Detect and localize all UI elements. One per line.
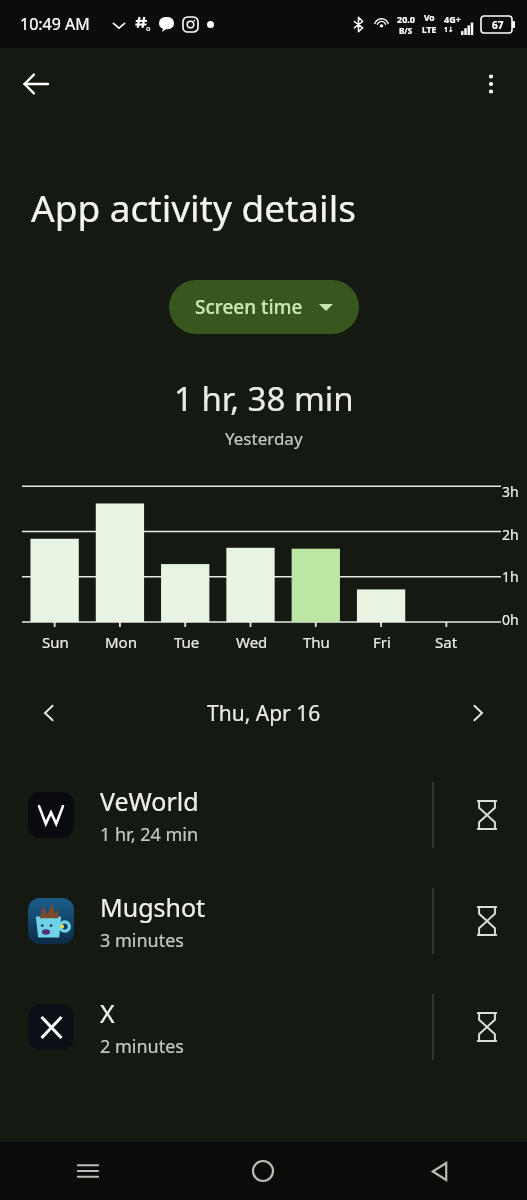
staticText: 2 minutes [100,1034,184,1059]
staticText: Tue [174,632,200,652]
button[interactable]: Next day [447,682,509,744]
button[interactable]: Set app timer for X [447,987,527,1067]
staticText: 67 [492,18,504,32]
staticText: LTE [422,24,437,36]
staticText: Fri [373,632,391,652]
button[interactable]: Previous day [18,682,80,744]
staticText: Thu [303,632,330,652]
staticText: 1 hr, 38 min [174,376,354,421]
staticText: 20.0 [397,13,415,25]
button[interactable]: Recent apps [0,1142,175,1200]
staticText: X [100,996,115,1030]
staticText: VeWorld [100,784,199,818]
staticText: Wed [236,632,268,652]
staticText: Sat [435,632,458,652]
staticText: 1↓ [444,25,454,35]
button[interactable]: Mugshot [0,868,527,974]
staticText: Screen time [195,294,303,320]
staticText: 1 hr, 24 min [100,822,199,847]
button[interactable]: X [0,974,527,1080]
staticText: 1h [502,567,519,586]
staticText: Sun [42,632,69,652]
staticText: Vo [424,12,435,24]
staticText: 10:49 AM [20,13,90,35]
button[interactable]: Back [351,1142,527,1200]
button[interactable]: Set app timer for VeWorld [447,775,527,855]
staticText: 0h [502,610,519,628]
button[interactable]: VeWorld [0,762,527,868]
staticText: 2h [502,525,519,544]
button[interactable]: Home [175,1142,351,1200]
staticText: 3 minutes [100,928,184,953]
staticText: 3h [502,482,519,501]
staticText: B/S [399,25,413,36]
button[interactable]: Screen time [169,280,359,334]
staticText: Thu, Apr 16 [207,699,321,728]
button[interactable]: More options [465,58,517,110]
button[interactable]: Back [8,56,64,112]
staticText: App activity details [31,182,511,232]
staticText: 4G+ [444,13,461,25]
button[interactable]: Set app timer for Mugshot [447,881,527,961]
staticText: Yesterday [225,427,303,450]
staticText: Mugshot [100,890,206,924]
staticText: Mon [105,632,137,652]
